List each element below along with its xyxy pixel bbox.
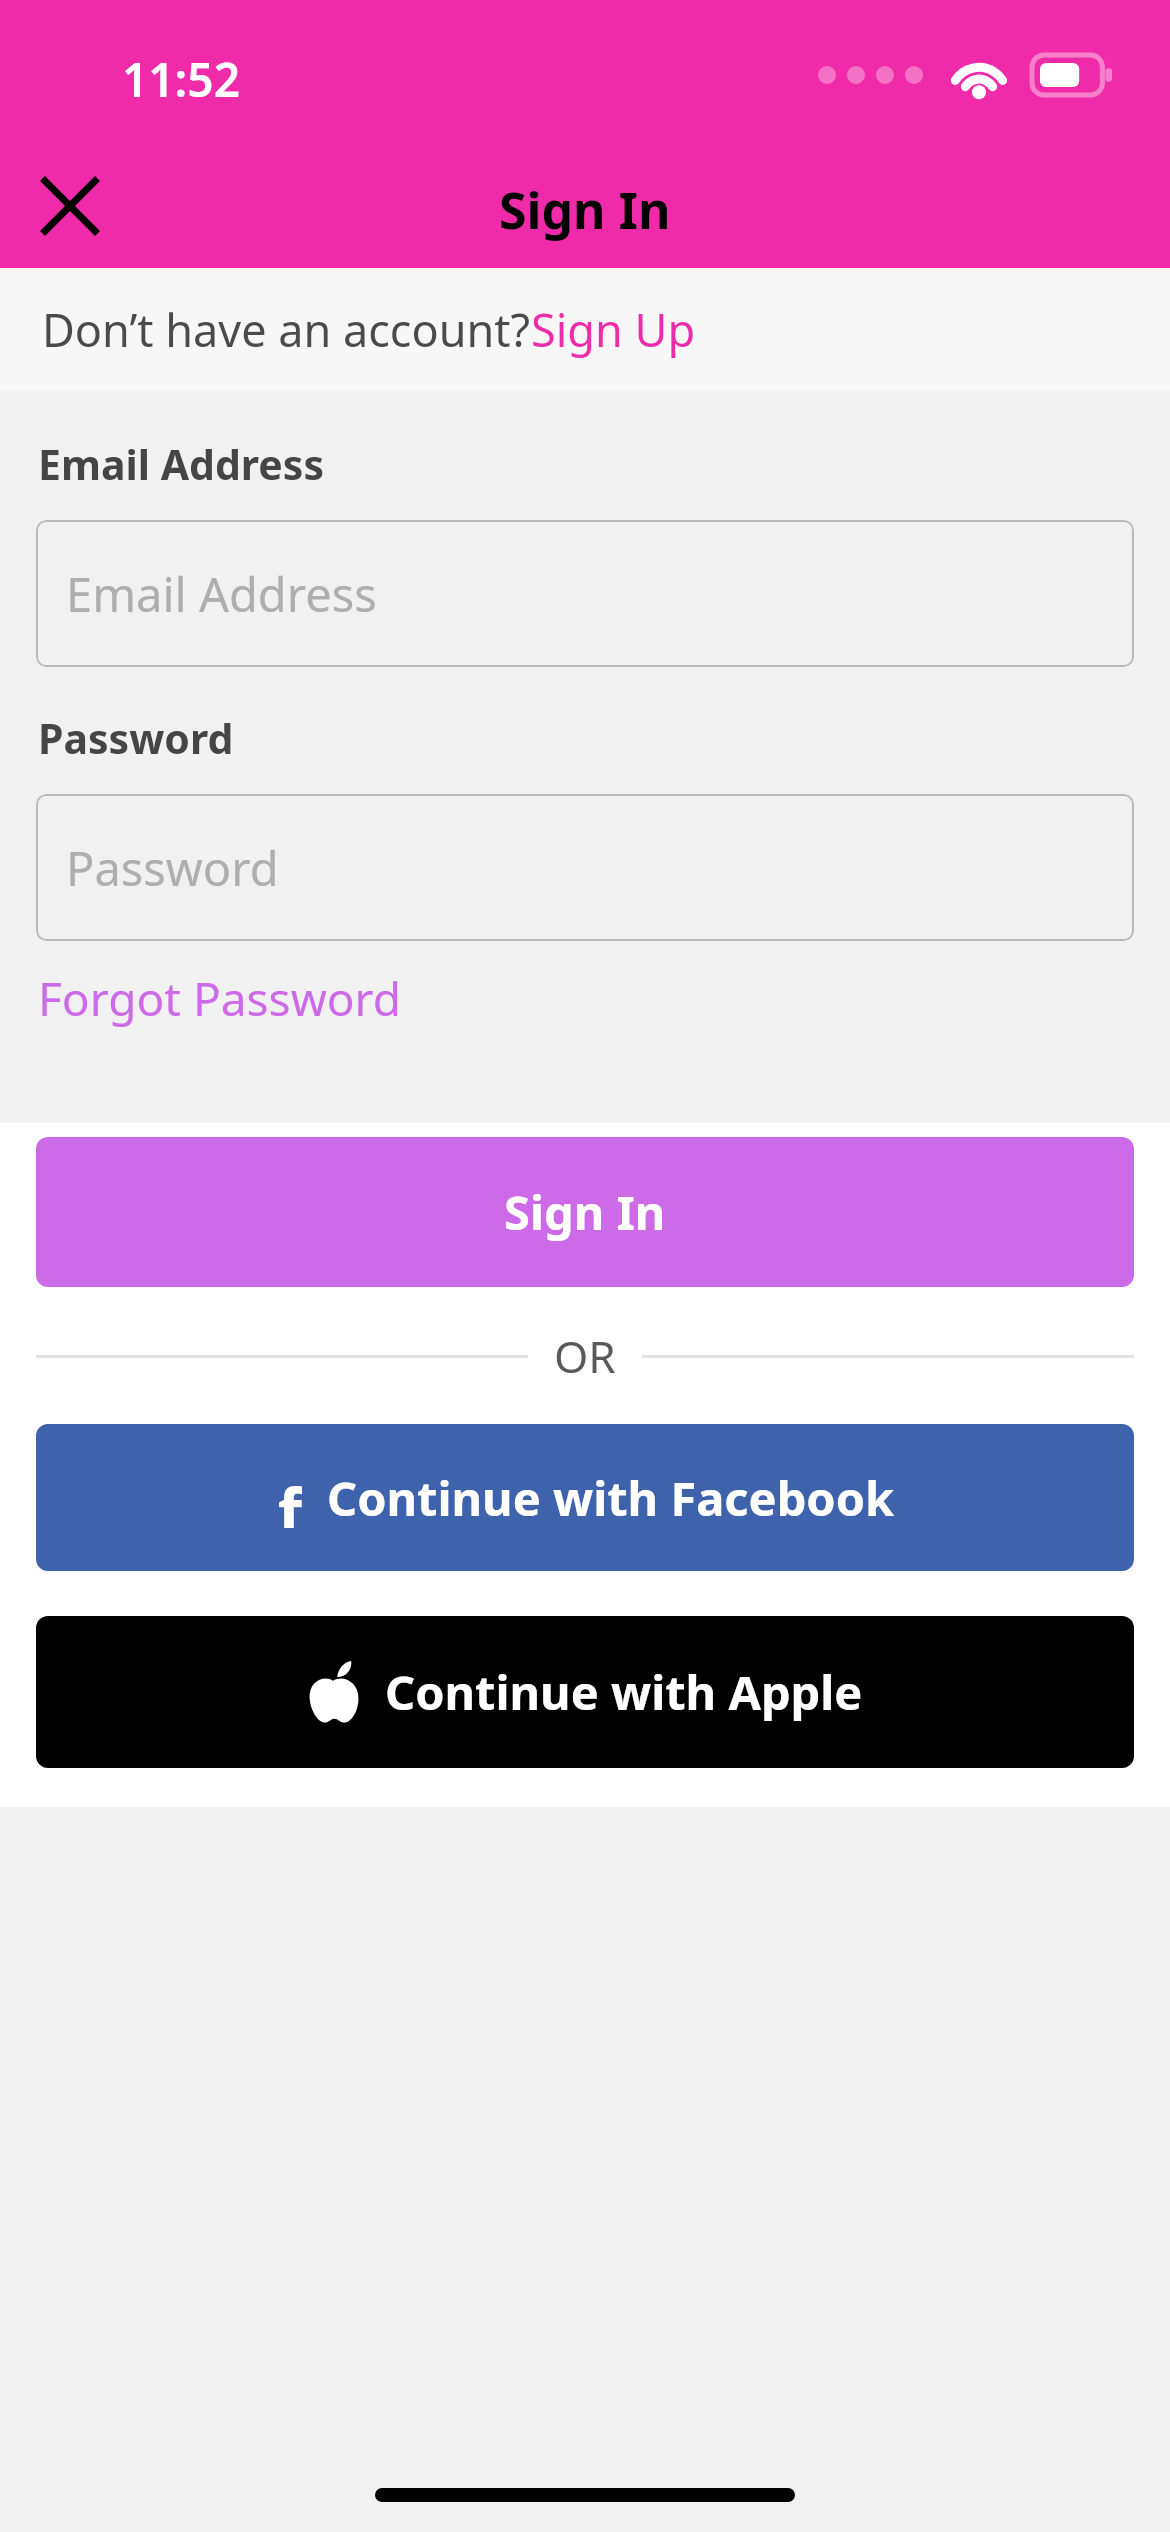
staticText: Password	[66, 836, 279, 900]
staticText: Continue with Apple	[385, 1660, 863, 1724]
staticText: Email Address	[66, 562, 377, 626]
button[interactable]: Sign Up	[531, 299, 696, 360]
button[interactable]: Sign In	[36, 1137, 1134, 1287]
staticText: Password	[38, 710, 234, 766]
staticText: Sign Up	[531, 299, 696, 360]
staticText: f	[278, 1468, 302, 1528]
button[interactable]: f	[36, 1424, 1134, 1571]
button[interactable]: Password	[36, 794, 1134, 941]
staticText: Sign In	[504, 1180, 666, 1244]
staticText: Continue with Facebook	[327, 1466, 895, 1530]
staticText: Forgot Password	[38, 967, 401, 1030]
button[interactable]: Continue with Apple	[36, 1616, 1134, 1768]
staticText: 11:52	[122, 48, 240, 111]
button[interactable]: Email Address	[36, 520, 1134, 667]
button[interactable]: Forgot Password	[38, 967, 401, 1030]
staticText: OR	[554, 1326, 616, 1386]
button[interactable]: Close	[22, 158, 118, 254]
staticText: Don’t have an account?	[42, 299, 531, 360]
staticText: Email Address	[38, 436, 324, 492]
staticText: Sign In	[499, 176, 671, 244]
